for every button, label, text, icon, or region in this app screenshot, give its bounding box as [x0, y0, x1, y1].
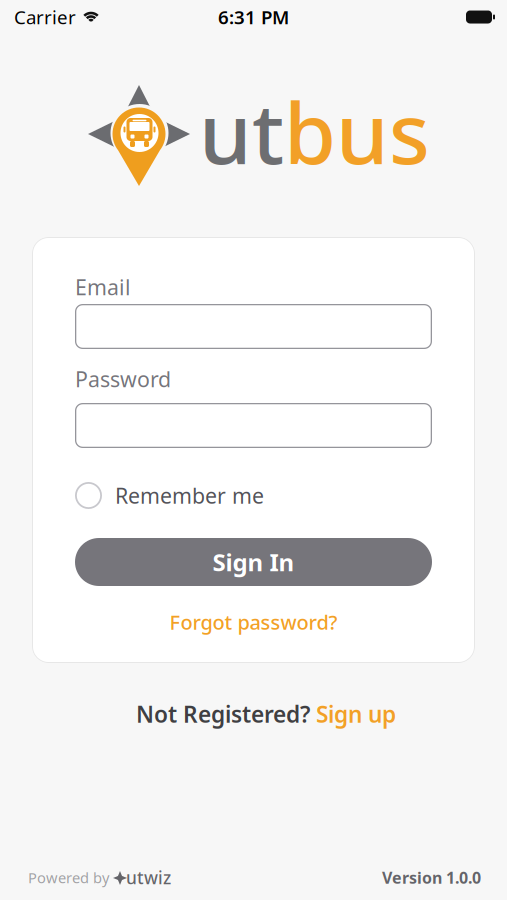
- staticText: Carrier: [14, 5, 76, 29]
- staticText: Forgot password?: [169, 609, 337, 635]
- staticText: Remember me: [115, 481, 264, 510]
- button[interactable]: Sign In: [75, 538, 432, 586]
- button[interactable]: Forgot password?: [169, 610, 337, 634]
- staticText: utwiz: [126, 866, 171, 889]
- staticText: 6:31 PM: [218, 5, 289, 29]
- staticText: Sign up: [316, 699, 396, 729]
- staticText: Powered by: [28, 868, 113, 887]
- staticText: bus: [284, 76, 430, 187]
- staticText: Password: [75, 365, 171, 393]
- button[interactable]: Email: [75, 304, 432, 349]
- button[interactable]: Password: [75, 403, 432, 448]
- button[interactable]: Remember me: [75, 482, 264, 509]
- staticText: Not Registered?: [136, 699, 310, 729]
- staticText: Email: [75, 273, 131, 301]
- staticText: Version 1.0.0: [382, 867, 481, 888]
- staticText: ut: [199, 76, 284, 187]
- button[interactable]: Sign up: [316, 699, 396, 729]
- staticText: Sign In: [212, 546, 294, 578]
